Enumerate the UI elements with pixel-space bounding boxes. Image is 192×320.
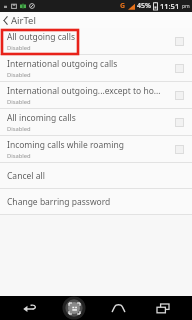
staticText: Disabled (7, 44, 31, 52)
button[interactable]: International outgoing calls (0, 55, 192, 81)
staticText: International outgoing calls (7, 58, 118, 70)
staticText: Disabled (7, 98, 31, 106)
button[interactable]: Back (14, 296, 44, 320)
button[interactable]: Cancel all (0, 163, 192, 188)
staticText: 45% (137, 1, 151, 11)
button[interactable]: Home (103, 296, 133, 320)
button[interactable]: Change barring password (0, 189, 192, 214)
staticText: AirTel (11, 14, 36, 27)
staticText: Incoming calls while roaming (7, 139, 124, 151)
staticText: Disabled (7, 71, 31, 79)
button[interactable]: Toggle (171, 60, 187, 76)
staticText: Cancel all (7, 170, 45, 182)
staticText: Disabled (7, 125, 31, 133)
button[interactable]: Toggle (171, 114, 187, 130)
staticText: pm (182, 3, 190, 10)
button[interactable]: All incoming calls (0, 109, 192, 135)
staticText: Disabled (7, 152, 31, 160)
button[interactable]: Toggle (171, 33, 187, 49)
staticText: All incoming calls (7, 112, 76, 124)
button[interactable]: Toggle (171, 141, 187, 157)
staticText: 11:51 (160, 1, 180, 11)
other: Back (3, 16, 8, 25)
button[interactable]: Toggle (171, 87, 187, 103)
button[interactable]: Recent apps (148, 296, 178, 320)
staticText: International outgoing...except to home … (7, 85, 167, 97)
button[interactable]: Incoming calls while roaming (0, 136, 192, 162)
staticText: G (120, 1, 126, 11)
staticText: Change barring password (7, 196, 111, 208)
staticText: All outgoing calls (7, 31, 76, 43)
button[interactable]: All outgoing calls (0, 28, 192, 54)
button[interactable]: Back (0, 12, 42, 28)
button[interactable]: International outgoing...except to home … (0, 82, 192, 108)
button[interactable]: Screenshot (59, 296, 89, 320)
